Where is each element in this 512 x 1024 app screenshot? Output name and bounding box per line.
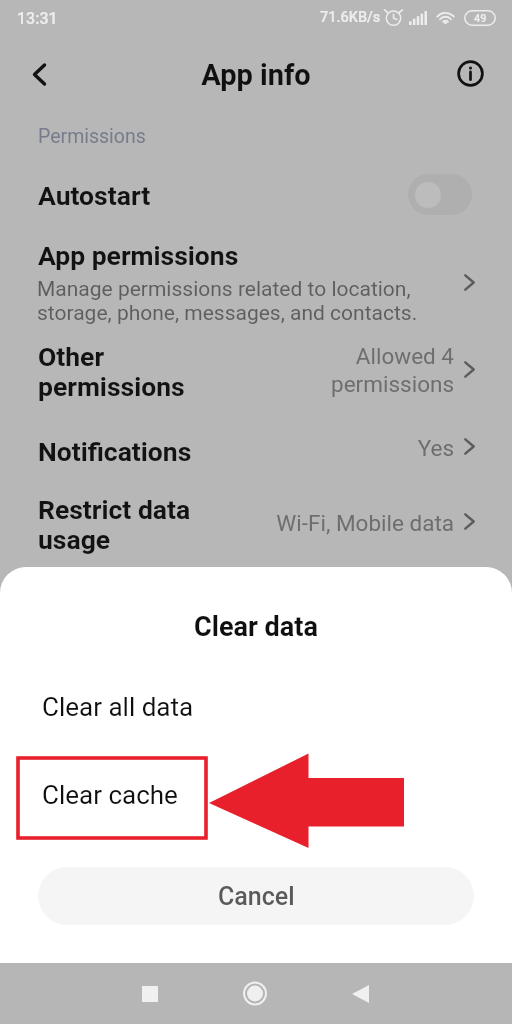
staticText: Manage permissions related to location, … <box>37 277 418 325</box>
staticText: 13:31 <box>17 9 58 28</box>
button[interactable]: App details <box>451 54 490 93</box>
button[interactable]: Clear all data <box>0 683 512 733</box>
button[interactable]: Autostart <box>0 168 512 222</box>
staticText: Wi-Fi, Mobile data <box>236 510 454 536</box>
staticText: Notifications <box>38 436 192 467</box>
button[interactable]: Notifications <box>0 424 512 478</box>
staticText: Other permissions <box>38 341 185 402</box>
staticText: App permissions <box>38 240 239 271</box>
staticText: Clear all data <box>42 692 194 722</box>
button[interactable]: App permissions <box>0 228 512 326</box>
button[interactable]: Other permissions <box>0 330 512 410</box>
button[interactable]: Home <box>231 970 279 1018</box>
staticText: Allowed 4 permissions <box>256 343 454 398</box>
button[interactable]: Autostart toggle <box>408 174 472 215</box>
staticText: Clear cache <box>42 780 178 810</box>
button[interactable]: Recents <box>126 970 174 1018</box>
button[interactable]: Clear cache <box>0 770 512 822</box>
button[interactable]: Restrict data usage <box>0 483 512 563</box>
staticText: Permissions <box>38 125 146 148</box>
staticText: Restrict data usage <box>38 494 191 555</box>
staticText: Clear data <box>0 611 512 643</box>
button[interactable]: Back <box>336 970 384 1018</box>
staticText: Yes <box>296 435 454 461</box>
button[interactable]: Cancel <box>38 867 474 925</box>
staticText: App info <box>0 58 512 92</box>
staticText: 49 <box>474 12 487 25</box>
staticText: Cancel <box>218 882 295 911</box>
button[interactable]: Back <box>18 53 60 95</box>
staticText: Autostart <box>38 180 151 211</box>
staticText: 71.6KB/s <box>320 9 381 26</box>
